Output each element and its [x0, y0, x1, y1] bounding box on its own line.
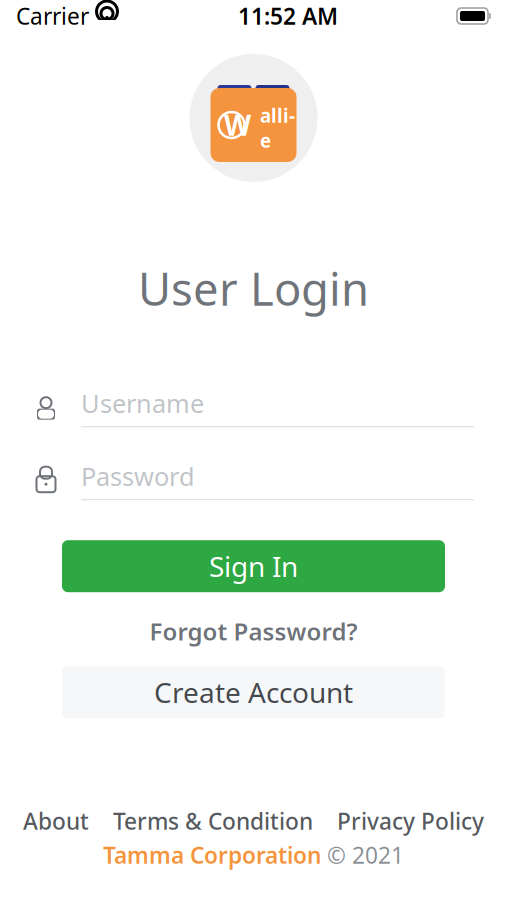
staticText: Privacy Policy: [337, 806, 484, 836]
button[interactable]: Privacy Policy: [337, 806, 484, 836]
button[interactable]: About: [23, 806, 89, 836]
staticText: Terms & Condition: [113, 806, 313, 836]
button[interactable]: Create Account: [62, 666, 445, 718]
staticText: Forgot Password?: [149, 615, 357, 647]
staticText: © 2021: [327, 840, 404, 870]
staticText: Sign In: [209, 548, 298, 585]
staticText: Password: [81, 459, 195, 493]
staticText: About: [23, 806, 89, 836]
staticText: Carrier: [16, 1, 89, 31]
staticText: W: [224, 106, 251, 144]
button[interactable]: Forgot Password?: [62, 618, 445, 644]
staticText: Create Account: [154, 674, 353, 711]
staticText: User Login: [138, 258, 369, 318]
staticText: Tamma Corporation: [103, 840, 321, 870]
staticText: Username: [81, 386, 204, 420]
staticText: 11:52 AM: [238, 1, 338, 31]
button[interactable]: Terms & Condition: [113, 806, 313, 836]
staticText: allie: [260, 103, 295, 153]
button[interactable]: Sign In: [62, 540, 445, 592]
